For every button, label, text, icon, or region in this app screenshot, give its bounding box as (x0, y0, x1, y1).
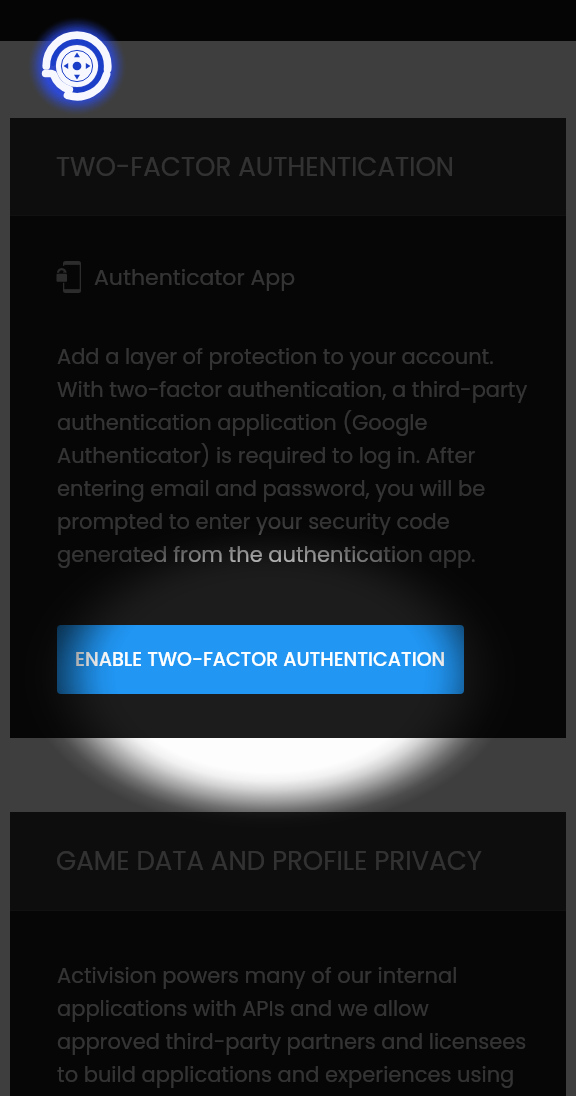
button[interactable]: TWO-FACTOR AUTHENTICATION (10, 118, 566, 215)
button[interactable]: ENABLE TWO-FACTOR AUTHENTICATION (57, 625, 464, 694)
staticText: GAME DATA AND PROFILE PRIVACY (56, 843, 482, 879)
staticText: Add a layer of protection to your accoun… (57, 342, 531, 570)
button[interactable]: Activision (33, 22, 121, 110)
staticText: TWO-FACTOR AUTHENTICATION (56, 149, 455, 185)
button[interactable]: GAME DATA AND PROFILE PRIVACY (10, 812, 566, 910)
staticText: ENABLE TWO-FACTOR AUTHENTICATION (75, 646, 446, 673)
staticText: Authenticator App (94, 262, 296, 293)
staticText: Activision powers many of our internal a… (57, 961, 531, 1090)
